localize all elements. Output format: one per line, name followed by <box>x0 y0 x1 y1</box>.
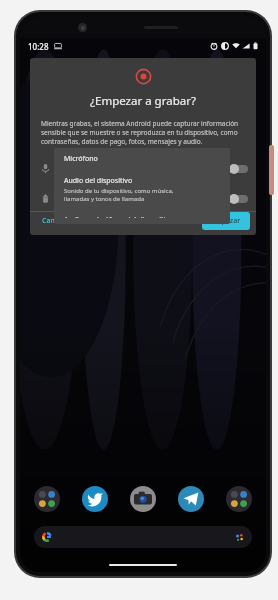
staticText: Audio y micrófono del dispositivo <box>64 215 174 218</box>
button[interactable]: Audio del dispositivo <box>54 170 230 209</box>
staticText: Audio del dispositivo <box>64 176 133 186</box>
button[interactable]: Camera <box>130 486 156 512</box>
button[interactable] <box>34 526 252 548</box>
button[interactable]: Telegram <box>178 486 204 512</box>
button[interactable]: Folder <box>226 486 252 512</box>
button[interactable]: Micrófono <box>54 148 230 170</box>
button[interactable]: Twitter <box>82 486 108 512</box>
staticText: 10:28 <box>28 41 49 52</box>
button[interactable] <box>30 154 256 182</box>
staticText: Cancelar <box>42 216 72 226</box>
button[interactable]: Empezar <box>202 212 250 230</box>
staticText: Sonido de tu dispositivo, como música, l… <box>64 187 174 203</box>
staticText: Empezar <box>211 216 241 226</box>
button[interactable]: Audio y micrófono del dispositivo <box>54 209 230 224</box>
button[interactable]: Cancelar <box>40 214 74 228</box>
staticText: ¿Empezar a grabar? <box>90 93 196 109</box>
staticText: Micrófono <box>64 154 98 164</box>
button[interactable]: Folder <box>34 486 60 512</box>
staticText: Mientras grabas, el sistema Android pued… <box>41 119 245 146</box>
button[interactable]: Power <box>269 145 274 195</box>
button[interactable] <box>30 184 256 212</box>
